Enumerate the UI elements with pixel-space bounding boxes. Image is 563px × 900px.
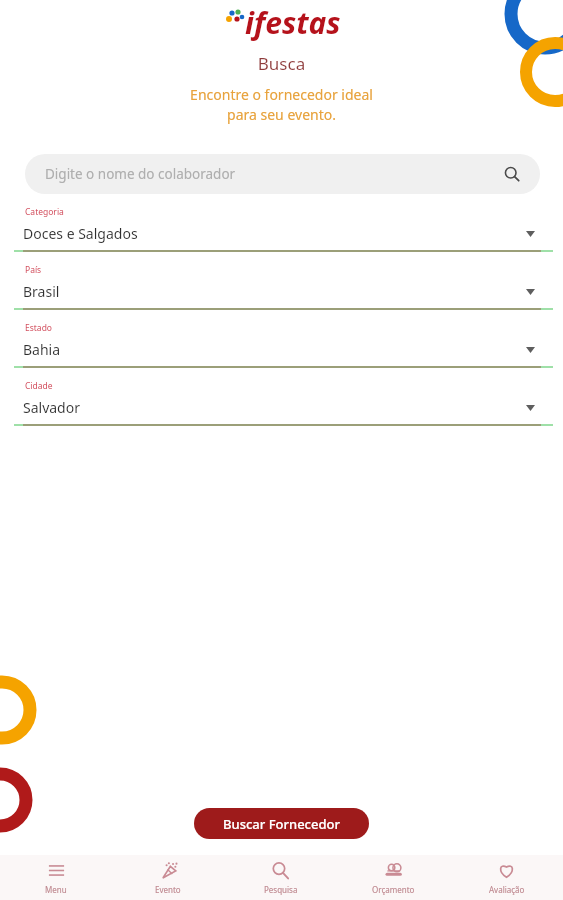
staticText: Categoria	[25, 206, 64, 218]
button[interactable]: Cidade	[0, 368, 563, 426]
staticText: Pesquisa	[264, 884, 298, 895]
staticText: Cidade	[25, 380, 53, 392]
button[interactable]: País	[0, 252, 563, 310]
staticText: Doces e Salgados	[23, 224, 526, 243]
staticText: Estado	[25, 322, 53, 334]
button[interactable]: Menu	[0, 855, 112, 900]
other: Pesquisar	[504, 166, 520, 182]
staticText: Encontre o fornecedor ideal para seu eve…	[0, 85, 563, 124]
button[interactable]: Avaliação	[450, 855, 563, 900]
staticText: Digite o nome do colaborador	[45, 165, 504, 183]
staticText: Avaliação	[489, 884, 525, 895]
staticText: Brasil	[23, 282, 526, 301]
staticText: Salvador	[23, 398, 526, 417]
staticText: Busca	[0, 52, 563, 75]
staticText: Buscar Fornecedor	[223, 815, 340, 833]
staticText: País	[25, 264, 42, 276]
button[interactable]: Categoria	[0, 194, 563, 252]
staticText: Orçamento	[372, 884, 415, 895]
staticText: Bahia	[23, 340, 526, 359]
button[interactable]: Pesquisa	[224, 855, 337, 900]
button[interactable]: Estado	[0, 310, 563, 368]
button[interactable]: Evento	[112, 855, 224, 900]
staticText: ifestas	[245, 2, 341, 43]
button[interactable]: Buscar Fornecedor	[194, 808, 369, 839]
button[interactable]: Orçamento	[337, 855, 450, 900]
button[interactable]: Digite o nome do colaborador	[25, 154, 540, 194]
staticText: Evento	[155, 884, 181, 895]
staticText: Menu	[45, 884, 67, 895]
